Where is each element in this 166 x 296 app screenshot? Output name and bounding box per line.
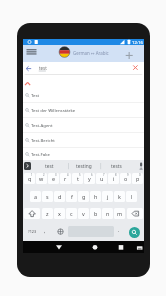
- staticText: h: [94, 193, 98, 200]
- button[interactable]: [24, 62, 36, 75]
- button[interactable]: Test der Willensstärke: [23, 103, 144, 118]
- button[interactable]: i: [108, 173, 119, 184]
- button[interactable]: q: [24, 173, 35, 184]
- staticText: 9: [127, 173, 129, 177]
- button[interactable]: e: [48, 173, 59, 184]
- button[interactable]: l: [126, 191, 137, 202]
- button[interactable]: [129, 227, 140, 238]
- button[interactable]: [129, 62, 143, 75]
- staticText: Test: [31, 92, 40, 98]
- staticText: q: [28, 175, 32, 182]
- staticText: .: [118, 226, 120, 233]
- staticText: 4: [67, 173, 69, 177]
- button[interactable]: c: [66, 208, 77, 219]
- staticText: test: [39, 65, 47, 71]
- staticText: a: [34, 193, 38, 200]
- button[interactable]: ?123: [24, 226, 40, 237]
- button[interactable]: [25, 46, 38, 58]
- staticText: y: [88, 175, 91, 182]
- button[interactable]: Test: [23, 88, 144, 103]
- button[interactable]: Test-Bericht: [23, 133, 144, 148]
- button[interactable]: testing: [68, 161, 100, 172]
- button[interactable]: [55, 226, 66, 237]
- button[interactable]: [89, 242, 101, 252]
- staticText: 0: [139, 173, 141, 177]
- button[interactable]: Test-Fake: [23, 147, 144, 162]
- button[interactable]: [123, 47, 136, 60]
- staticText: x: [58, 210, 61, 217]
- button[interactable]: b: [90, 208, 101, 219]
- button[interactable]: s: [42, 191, 53, 202]
- staticText: v: [82, 210, 85, 217]
- button[interactable]: y: [84, 173, 95, 184]
- button[interactable]: tests: [100, 161, 133, 172]
- button[interactable]: z: [42, 208, 53, 219]
- button[interactable]: [24, 208, 40, 219]
- staticText: 8: [115, 173, 117, 177]
- button[interactable]: v: [78, 208, 89, 219]
- staticText: 1: [31, 173, 33, 177]
- button[interactable]: a: [30, 191, 41, 202]
- button[interactable]: g: [78, 191, 89, 202]
- staticText: g: [82, 193, 86, 200]
- staticText: 2: [43, 173, 45, 177]
- button[interactable]: o: [120, 173, 131, 184]
- staticText: m: [117, 210, 123, 217]
- staticText: b: [94, 210, 98, 217]
- staticText: Test-Fake: [31, 151, 50, 157]
- button[interactable]: test: [31, 161, 68, 172]
- button[interactable]: [23, 77, 144, 88]
- staticText: 5: [79, 173, 81, 177]
- button[interactable]: ,: [40, 226, 49, 237]
- button[interactable]: [53, 242, 65, 252]
- staticText: l: [131, 193, 133, 200]
- staticText: z: [46, 210, 49, 217]
- button[interactable]: w: [36, 173, 47, 184]
- button[interactable]: d: [54, 191, 65, 202]
- staticText: tests: [111, 163, 122, 170]
- button[interactable]: h: [90, 191, 101, 202]
- staticText: u: [100, 175, 104, 182]
- staticText: w: [39, 175, 44, 182]
- staticText: j: [107, 193, 109, 200]
- button[interactable]: k: [114, 191, 125, 202]
- button[interactable]: u: [96, 173, 107, 184]
- button[interactable]: p: [132, 173, 143, 184]
- staticText: n: [106, 210, 110, 217]
- staticText: testing: [76, 163, 92, 170]
- button[interactable]: [24, 162, 31, 170]
- button[interactable]: f: [66, 191, 77, 202]
- staticText: o: [124, 175, 128, 182]
- button[interactable]: [115, 242, 127, 252]
- staticText: ,: [44, 227, 46, 234]
- staticText: p: [136, 175, 140, 182]
- button[interactable]: [134, 243, 145, 253]
- staticText: 3: [55, 173, 57, 177]
- staticText: f: [71, 193, 73, 200]
- button[interactable]: [127, 208, 143, 219]
- button[interactable]: t: [72, 173, 83, 184]
- button[interactable]: German ↔ Arabic: [59, 46, 121, 61]
- button[interactable]: r: [60, 173, 71, 184]
- button[interactable]: Test-Agent: [23, 118, 144, 133]
- staticText: Test-Agent: [31, 122, 53, 128]
- button[interactable]: .: [115, 226, 123, 237]
- staticText: ?123: [28, 229, 37, 234]
- button[interactable]: x: [54, 208, 65, 219]
- staticText: r: [64, 175, 67, 182]
- button[interactable]: n: [102, 208, 113, 219]
- button[interactable]: j: [102, 191, 113, 202]
- staticText: t: [77, 175, 79, 182]
- staticText: d: [58, 193, 62, 200]
- staticText: German ↔ Arabic: [73, 50, 109, 56]
- staticText: 6: [91, 173, 93, 177]
- staticText: test: [45, 163, 54, 170]
- staticText: i: [113, 175, 115, 182]
- staticText: Test-Bericht: [31, 137, 55, 143]
- staticText: k: [118, 193, 121, 200]
- button[interactable]: m: [114, 208, 125, 219]
- staticText: c: [70, 210, 73, 217]
- staticText: Test der Willensstärke: [31, 107, 76, 113]
- staticText: 7: [103, 173, 105, 177]
